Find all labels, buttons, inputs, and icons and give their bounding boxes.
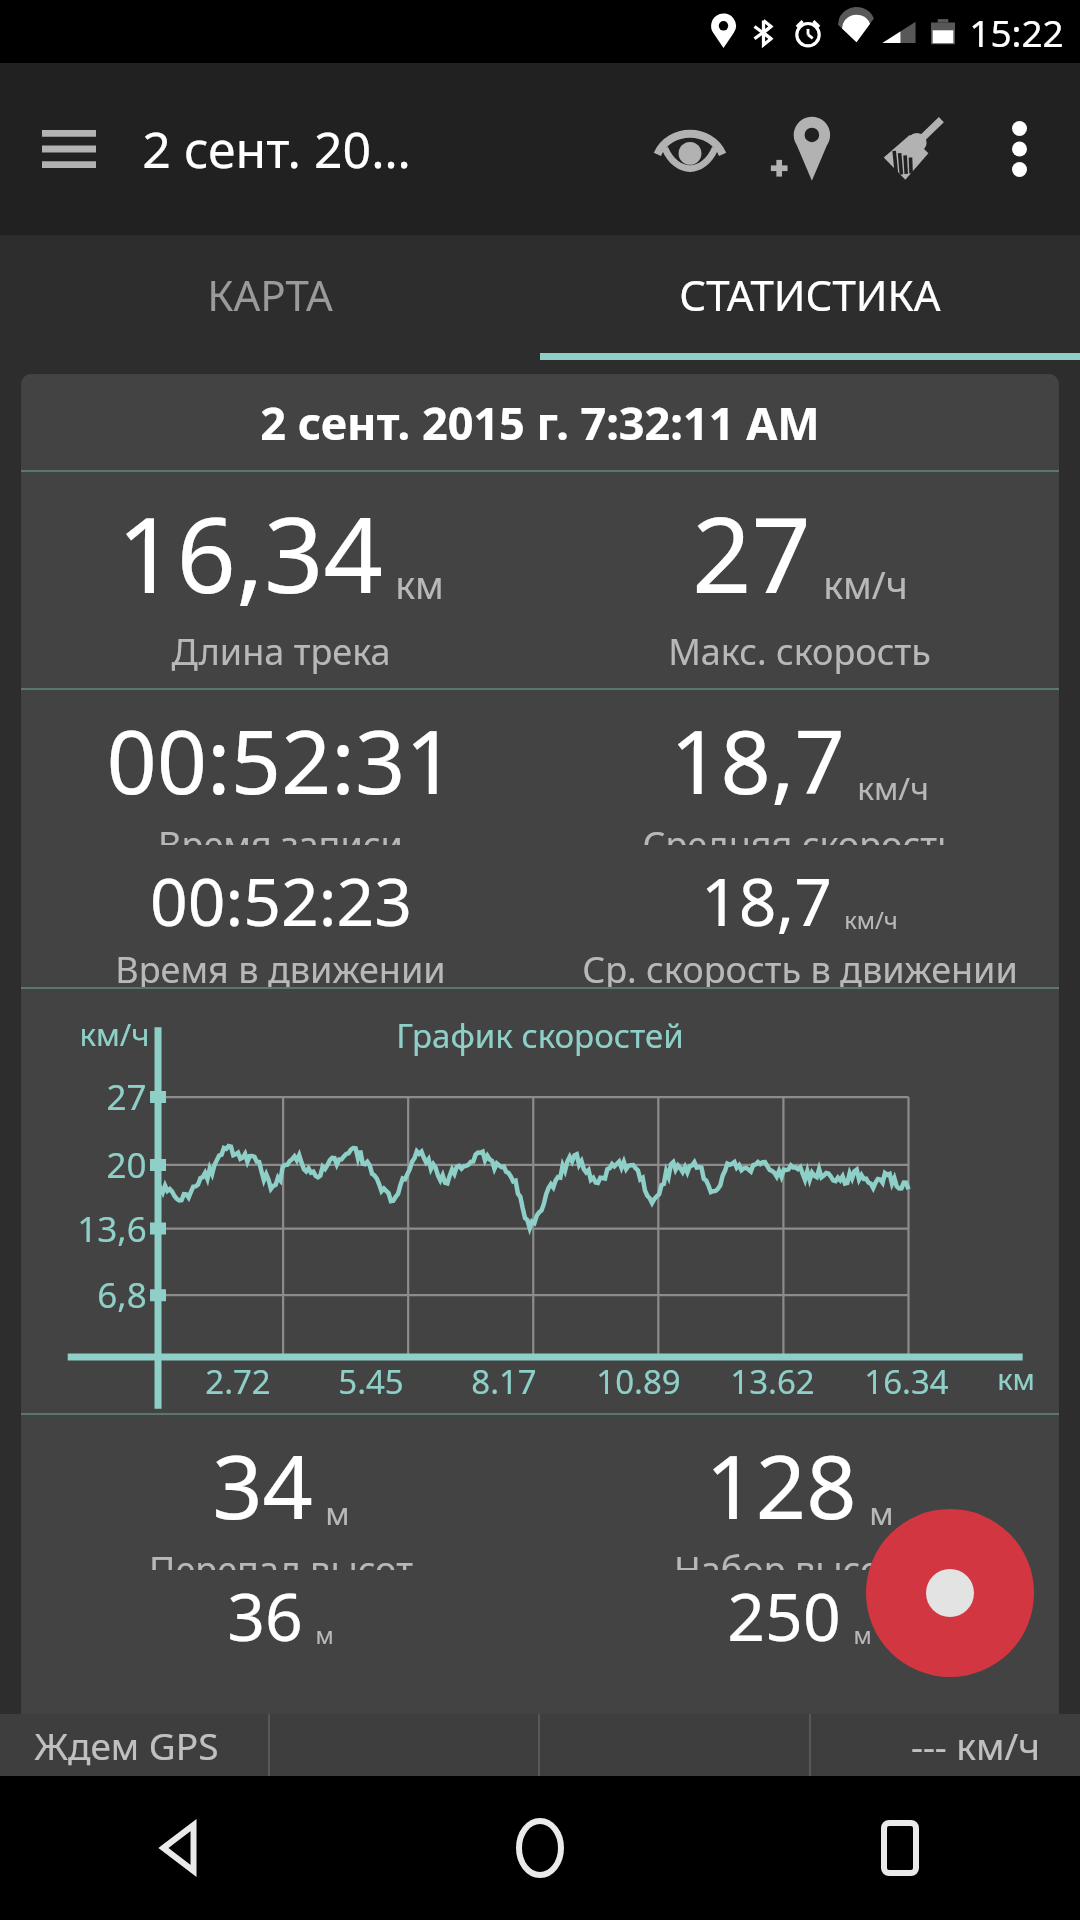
staticText: м (853, 1619, 872, 1651)
staticText: 16,34 (117, 482, 383, 624)
button[interactable]: Start recording (866, 1509, 1034, 1677)
staticText: График скоростей (396, 1013, 684, 1058)
button[interactable]: 00:52:31 (21, 690, 540, 845)
staticText: 2 сент. 20… (142, 115, 411, 183)
staticText: Ждем GPS (34, 1720, 219, 1770)
button[interactable]: Back (0, 1776, 360, 1920)
staticText: СТАТИСТИКА (679, 266, 941, 323)
staticText: 2.72 (205, 1359, 271, 1404)
staticText: Время записи (158, 820, 403, 845)
staticText: 5.45 (338, 1359, 404, 1404)
button[interactable]: Recent apps (720, 1776, 1080, 1920)
staticText: Макс. скорость (668, 627, 931, 676)
button[interactable]: 34 (21, 1415, 540, 1570)
staticText: Ср. скорость в движении (582, 945, 1018, 987)
button[interactable]: СТАТИСТИКА (540, 235, 1080, 353)
staticText: 27 (106, 1073, 147, 1121)
button[interactable]: 250 (540, 1570, 1059, 1690)
button[interactable]: More options (970, 100, 1068, 198)
staticText: 27 (692, 482, 811, 624)
staticText: 18,7 (670, 700, 845, 820)
staticText: км/ч (857, 766, 929, 809)
button[interactable]: Open navigation drawer (26, 106, 112, 192)
staticText: --- км/ч (911, 1720, 1040, 1770)
staticText: Длина трека (171, 627, 391, 676)
button[interactable]: 00:52:23 (21, 845, 540, 987)
staticText: 6,8 (97, 1271, 147, 1319)
staticText: 34 (212, 1425, 313, 1545)
staticText: Перепад высот (149, 1545, 413, 1570)
staticText: 2 сент. 2015 г. 7:32:11 AM (260, 392, 820, 453)
staticText: м (325, 1491, 350, 1534)
button[interactable]: 16,34 (21, 472, 540, 688)
button[interactable]: 128 (540, 1415, 1059, 1570)
button[interactable]: КАРТА (0, 235, 540, 353)
button[interactable]: 36 (21, 1570, 540, 1690)
staticText: м (869, 1491, 894, 1534)
staticText: 00:52:31 (106, 700, 456, 820)
staticText: м (315, 1619, 334, 1651)
button[interactable]: 18,7 (540, 690, 1059, 845)
staticText: км/ч (823, 559, 908, 610)
staticText: 00:52:23 (150, 855, 412, 945)
staticText: 10.89 (596, 1359, 681, 1404)
staticText: км (395, 559, 444, 610)
staticText: 18,7 (701, 855, 832, 945)
staticText: 128 (705, 1425, 857, 1545)
staticText: Набор высоты (674, 1545, 925, 1570)
staticText: Средняя скорость (642, 820, 957, 845)
staticText: км/ч (79, 1013, 150, 1055)
staticText: км (997, 1359, 1035, 1398)
staticText: Время в движении (115, 945, 446, 987)
staticText: км/ч (844, 904, 898, 936)
button[interactable]: Toggle visibility (634, 93, 746, 205)
staticText: 250 (727, 1570, 841, 1660)
staticText: 13,6 (77, 1205, 147, 1253)
button[interactable]: Home (360, 1776, 720, 1920)
staticText: 16.34 (864, 1359, 949, 1404)
button[interactable]: Clear track (858, 93, 970, 205)
staticText: 15:22 (969, 7, 1064, 57)
staticText: 8.17 (471, 1359, 537, 1404)
button[interactable]: 18,7 (540, 845, 1059, 987)
staticText: КАРТА (207, 266, 333, 323)
staticText: 13.62 (730, 1359, 815, 1404)
button[interactable]: Add waypoint (746, 93, 858, 205)
staticText: 36 (227, 1570, 303, 1660)
button[interactable]: 27 (540, 472, 1059, 688)
staticText: 20 (106, 1141, 147, 1189)
